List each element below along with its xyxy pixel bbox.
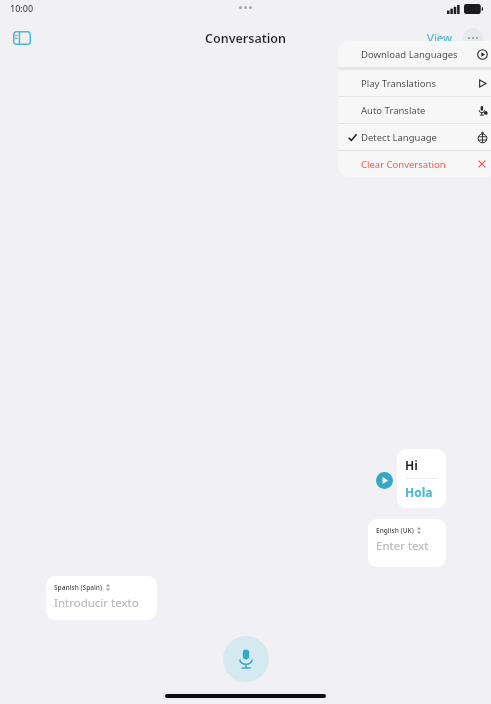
button[interactable]: Clear Conversation: [338, 151, 491, 177]
staticText: Play Translations: [361, 77, 436, 90]
staticText: Enter text: [376, 538, 429, 554]
staticText: 10:00: [10, 2, 34, 14]
staticText: Detect Language: [361, 131, 437, 144]
staticText: Hola: [405, 484, 433, 500]
staticText: Spanish (Spain): [54, 583, 103, 592]
staticText: Introducir texto: [54, 595, 139, 611]
staticText: Clear Conversation: [361, 158, 446, 171]
staticText: View: [427, 30, 453, 46]
button[interactable]: Auto Translate: [338, 97, 491, 123]
button[interactable]: English (UK): [368, 519, 446, 567]
button[interactable]: Play Translations: [338, 70, 491, 96]
staticText: Download Languages: [361, 48, 458, 61]
staticText: English (UK): [376, 526, 414, 535]
button[interactable]: Record speech: [223, 636, 269, 682]
button[interactable]: Detect Language: [338, 124, 491, 150]
button[interactable]: Hi: [397, 449, 446, 508]
button[interactable]: More options: [463, 28, 483, 48]
staticText: Conversation: [205, 30, 287, 47]
button[interactable]: Play translation: [376, 472, 393, 489]
staticText: Auto Translate: [361, 104, 426, 117]
button[interactable]: Spanish (Spain): [46, 576, 157, 620]
button[interactable]: View: [423, 26, 457, 50]
staticText: Hi: [405, 457, 418, 473]
button[interactable]: Download Languages: [338, 41, 491, 67]
button[interactable]: Toggle sidebar: [8, 24, 36, 52]
